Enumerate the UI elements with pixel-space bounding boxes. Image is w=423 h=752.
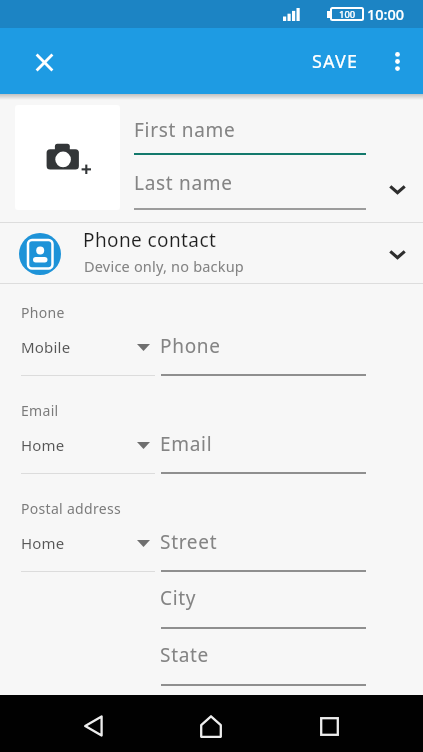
staticText: Home [21, 533, 65, 553]
staticText: 10:00 [367, 4, 405, 24]
button[interactable]: Last name [133, 170, 366, 203]
staticText: Phone [160, 333, 221, 359]
staticText: Street [160, 529, 218, 555]
button[interactable] [0, 223, 423, 283]
staticText: Mobile [21, 337, 71, 357]
staticText: First name [134, 117, 236, 143]
button[interactable] [21, 525, 155, 565]
staticText: City [160, 585, 197, 611]
staticText: Email [21, 401, 59, 420]
button[interactable] [382, 241, 412, 267]
button[interactable]: State [160, 642, 366, 675]
staticText: 100 [339, 8, 356, 21]
staticText: SAVE [312, 49, 359, 74]
staticText: Home [21, 435, 65, 455]
staticText: Email [160, 431, 213, 457]
staticText: State [160, 642, 210, 668]
button[interactable] [383, 41, 411, 81]
button[interactable] [382, 176, 412, 202]
button[interactable] [28, 46, 60, 78]
button[interactable] [194, 709, 228, 743]
button[interactable] [312, 709, 347, 743]
staticText: Phone [21, 303, 65, 322]
button[interactable] [21, 427, 155, 467]
staticText: Postal address [21, 499, 121, 518]
button[interactable] [161, 427, 366, 467]
button[interactable] [21, 329, 155, 369]
button[interactable]: First name [133, 117, 366, 150]
button[interactable]: SAVE [301, 39, 369, 83]
button[interactable]: City [160, 585, 366, 618]
button[interactable] [161, 329, 366, 369]
staticText: Phone contact [83, 227, 217, 253]
button[interactable] [15, 105, 120, 210]
button[interactable] [161, 525, 366, 565]
button[interactable] [76, 709, 111, 743]
staticText: Device only, no backup [84, 256, 244, 276]
staticText: Last name [134, 170, 233, 196]
